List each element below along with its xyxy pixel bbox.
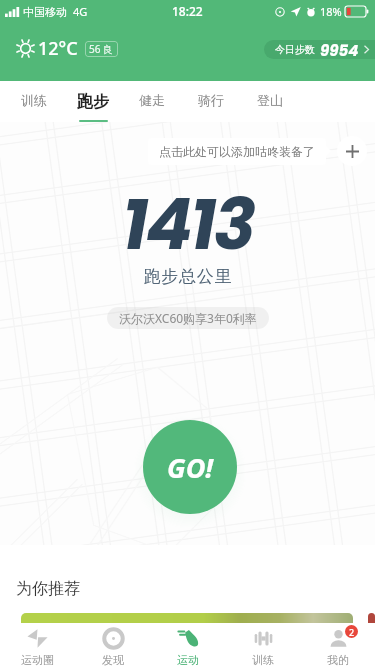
button[interactable]: 沃尔沃XC60购享3年0利率 <box>107 307 269 329</box>
staticText: 运动 <box>177 653 199 667</box>
button[interactable]: 跑步 <box>63 81 122 122</box>
staticText: 2 <box>349 626 355 638</box>
staticText: 训练 <box>21 92 47 108</box>
button[interactable]: 训练 <box>4 81 63 122</box>
staticText: 运动圈 <box>21 653 54 667</box>
staticText: 健走 <box>139 92 165 108</box>
staticText: 中国移动 <box>23 5 67 19</box>
button[interactable] <box>21 613 353 623</box>
button[interactable]: 骑行 <box>181 81 240 122</box>
staticText: 我的 <box>327 653 349 667</box>
staticText: 1413 <box>122 175 254 273</box>
button[interactable]: 运动 <box>150 623 225 667</box>
staticText: 4G <box>73 4 88 19</box>
staticText: 登山 <box>257 92 283 108</box>
staticText: 跑步总公里 <box>143 266 232 287</box>
button[interactable]: Add gear <box>337 136 367 166</box>
staticText: 12°C <box>38 36 78 61</box>
staticText: 点击此处可以添加咕咚装备了 <box>159 144 315 159</box>
staticText: 跑步 <box>77 92 109 112</box>
button[interactable]: GO! <box>143 420 237 514</box>
button[interactable]: 发现 <box>75 623 150 667</box>
button[interactable]: 健走 <box>122 81 181 122</box>
staticText: 18% <box>320 4 342 19</box>
button[interactable]: 今日步数 <box>264 40 375 59</box>
staticText: 发现 <box>102 653 124 667</box>
staticText: 为你推荐 <box>16 579 80 599</box>
button[interactable]: 我的 <box>300 623 375 667</box>
staticText: 今日步数 <box>275 43 315 56</box>
staticText: 训练 <box>252 653 274 667</box>
button[interactable]: 点击此处可以添加咕咚装备了 <box>148 138 326 165</box>
staticText: 沃尔沃XC60购享3年0利率 <box>119 310 257 326</box>
staticText: 骑行 <box>198 92 224 108</box>
staticText: 18:22 <box>172 3 203 19</box>
staticText: 56 良 <box>89 42 114 56</box>
staticText: 9954 <box>320 40 359 59</box>
button[interactable]: 训练 <box>225 623 300 667</box>
button[interactable]: 运动圈 <box>0 623 75 667</box>
button[interactable]: 登山 <box>240 81 299 122</box>
staticText: GO! <box>167 449 214 486</box>
